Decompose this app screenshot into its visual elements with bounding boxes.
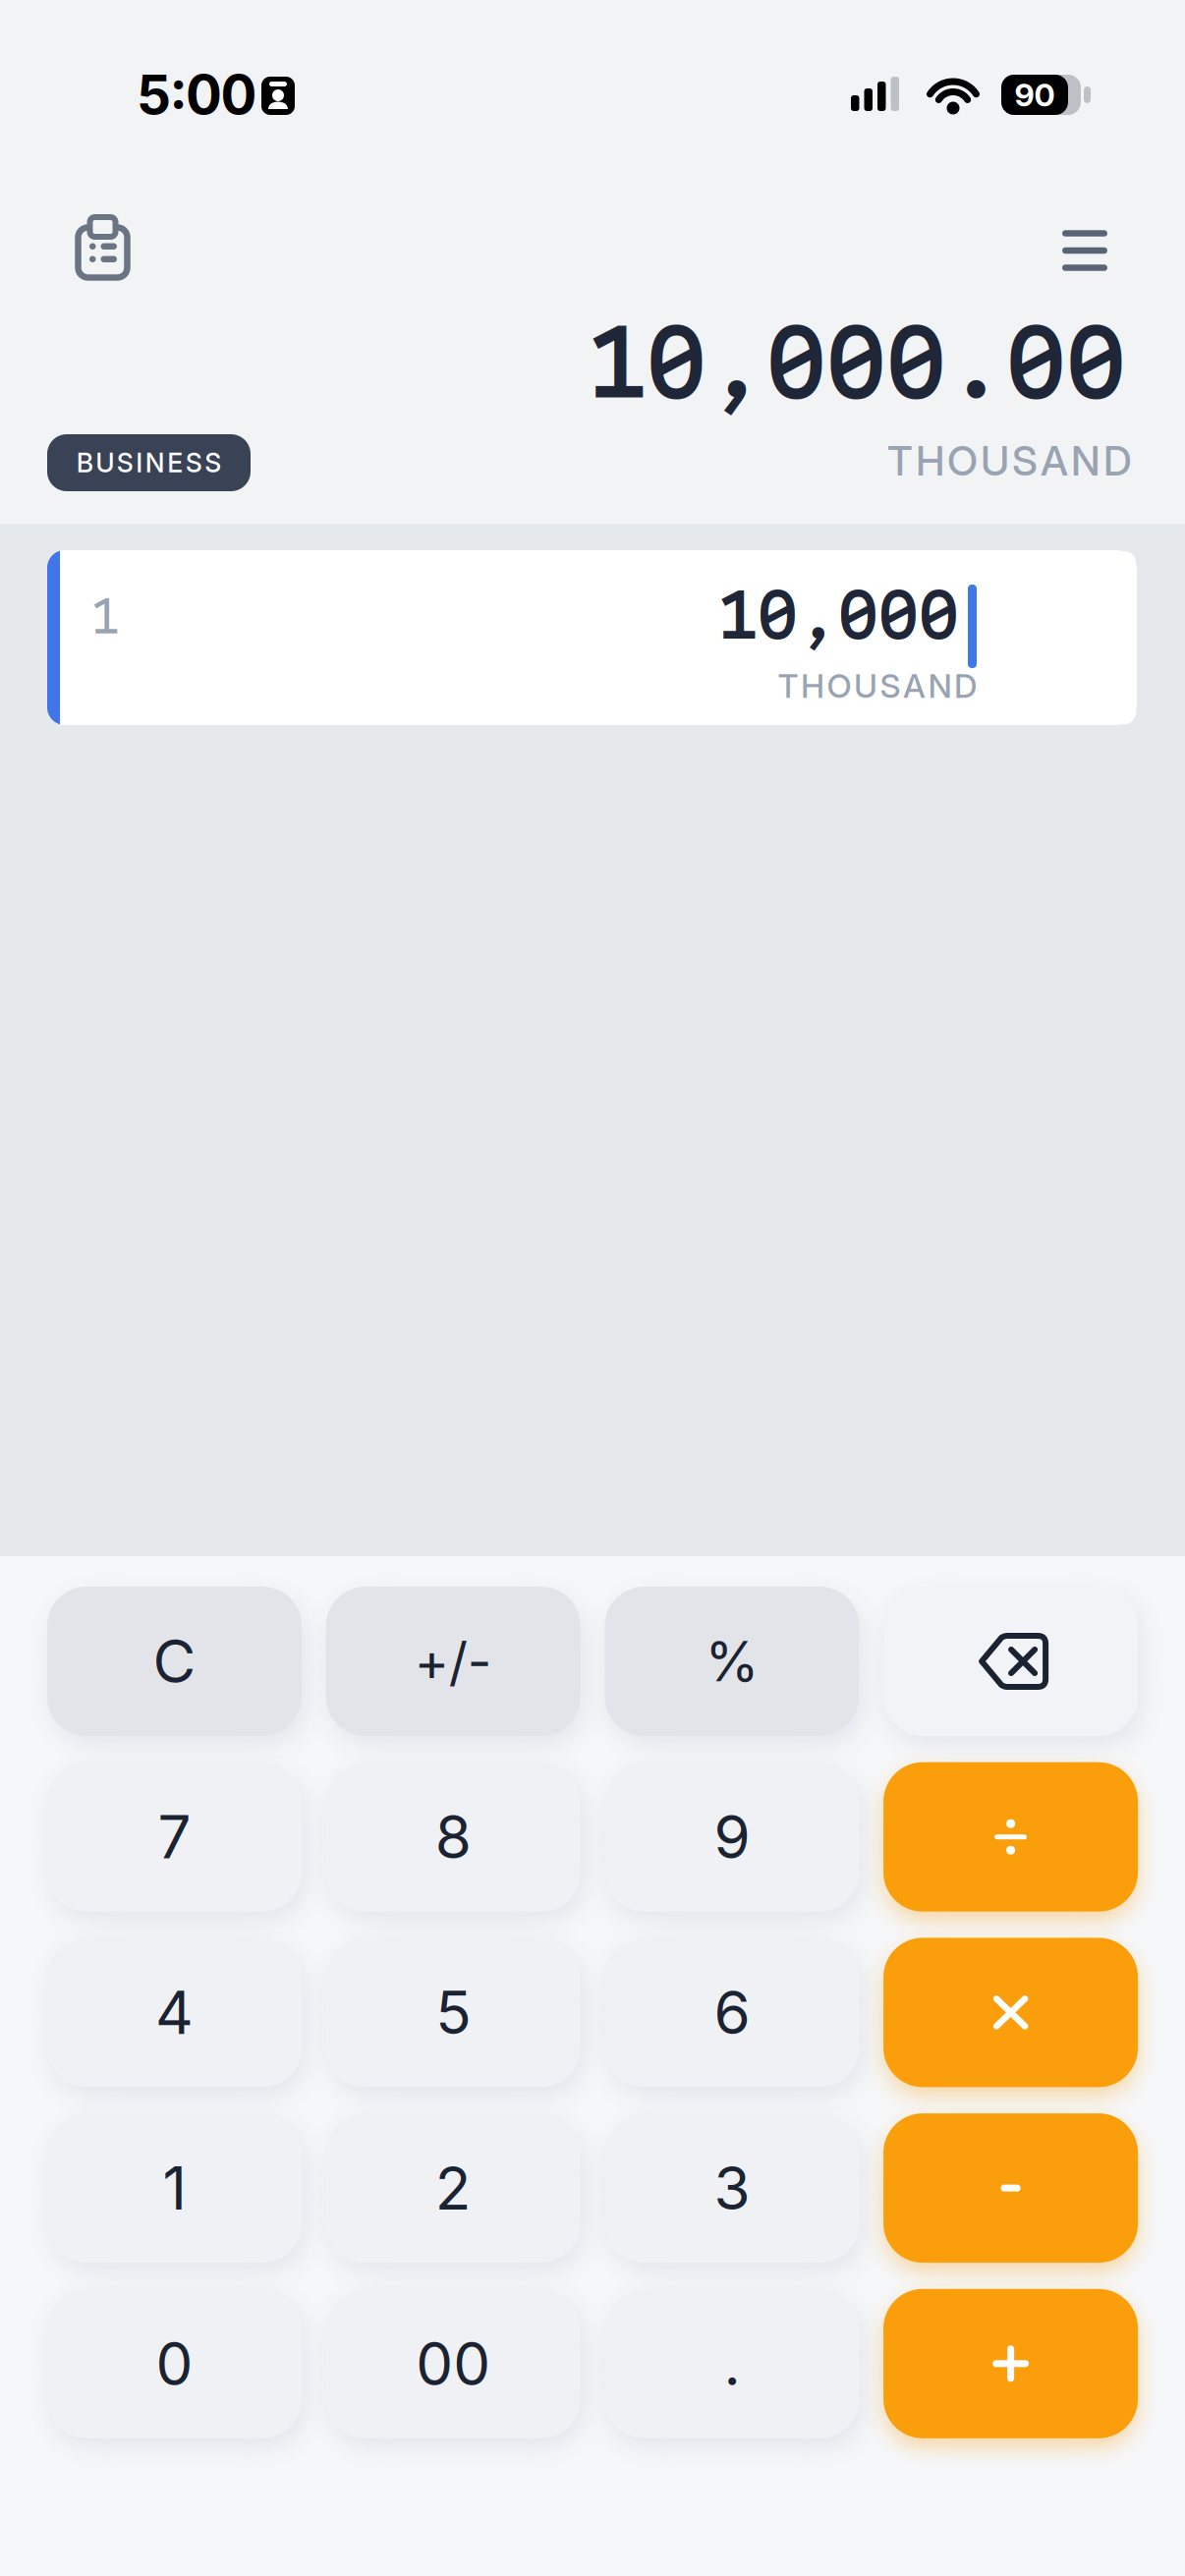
- button[interactable]: Multiply: [883, 1938, 1138, 2087]
- button[interactable]: Menu: [1040, 210, 1130, 291]
- staticText: 1: [163, 2152, 186, 2224]
- button[interactable]: C: [47, 1587, 302, 1736]
- staticText: 8: [435, 1801, 471, 1873]
- staticText: 90: [1015, 76, 1055, 114]
- button[interactable]: Divide: [883, 1762, 1138, 1912]
- button[interactable]: 5: [326, 1938, 580, 2087]
- button[interactable]: 4: [47, 1938, 302, 2087]
- staticText: 5:00: [137, 62, 257, 127]
- staticText: BUSINESS: [76, 447, 221, 479]
- button[interactable]: 00: [326, 2289, 580, 2438]
- staticText: 7: [158, 1801, 191, 1873]
- button[interactable]: History: [59, 198, 147, 297]
- button[interactable]: 0: [47, 2289, 302, 2438]
- button[interactable]: %: [605, 1587, 859, 1736]
- button[interactable]: Add: [883, 2289, 1138, 2438]
- staticText: .: [724, 2328, 740, 2399]
- button[interactable]: BUSINESS: [47, 434, 251, 491]
- button[interactable]: 2: [326, 2113, 580, 2263]
- button[interactable]: +/-: [326, 1587, 580, 1736]
- staticText: 6: [714, 1977, 750, 2048]
- staticText: 5: [435, 1977, 471, 2048]
- staticText: C: [153, 1626, 196, 1697]
- staticText: 0: [156, 2328, 193, 2399]
- button[interactable]: 1: [47, 2113, 302, 2263]
- button[interactable]: 7: [47, 1762, 302, 1912]
- staticText: 3: [714, 2152, 750, 2224]
- staticText: THOUSAND: [887, 436, 1132, 485]
- staticText: 10,000.00: [587, 301, 1126, 426]
- button[interactable]: Subtract: [883, 2113, 1138, 2263]
- staticText: 9: [714, 1801, 750, 1873]
- button[interactable]: 9: [605, 1762, 859, 1912]
- button[interactable]: 8: [326, 1762, 580, 1912]
- button[interactable]: 3: [605, 2113, 859, 2263]
- staticText: THOUSAND: [778, 666, 977, 706]
- staticText: +/-: [414, 1630, 492, 1693]
- staticText: 4: [155, 1977, 194, 2048]
- staticText: 2: [435, 2152, 471, 2224]
- button[interactable]: Delete: [883, 1587, 1138, 1736]
- staticText: 00: [416, 2328, 491, 2399]
- button[interactable]: 6: [605, 1938, 859, 2087]
- staticText: 1: [90, 587, 120, 647]
- staticText: 10,000: [717, 574, 959, 658]
- button[interactable]: .: [605, 2289, 859, 2438]
- staticText: %: [705, 1628, 759, 1695]
